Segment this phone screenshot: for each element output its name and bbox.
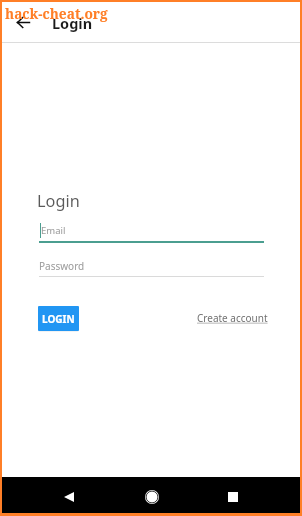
button[interactable]: Home (140, 485, 164, 509)
staticText: hack-cheat.org (5, 4, 108, 23)
staticText: LOGIN (42, 312, 75, 326)
button[interactable]: Back (57, 485, 81, 509)
button[interactable]: Navigate up (10, 9, 36, 35)
staticText: Create account (197, 311, 268, 325)
staticText: Password (39, 259, 85, 273)
button[interactable]: Create account (197, 311, 268, 325)
staticText: Email (41, 224, 66, 237)
staticText: Login (52, 13, 93, 33)
button[interactable]: Password (39, 256, 264, 277)
button[interactable]: Recent apps (221, 485, 245, 509)
staticText: Login (37, 190, 80, 212)
button[interactable]: Email (39, 218, 264, 243)
button[interactable]: LOGIN (38, 306, 79, 331)
